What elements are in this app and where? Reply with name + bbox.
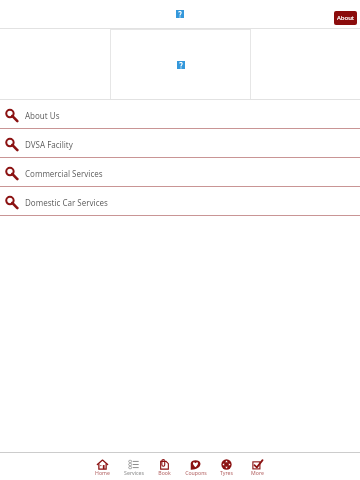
button[interactable]: Domestic Car Services	[0, 187, 360, 216]
button[interactable]: Services	[118, 453, 149, 480]
staticText: Services	[124, 469, 144, 476]
button[interactable]: Home	[87, 453, 118, 480]
button[interactable]: About Us	[0, 100, 360, 129]
staticText: Commercial Services	[25, 168, 103, 179]
staticText: Domestic Car Services	[25, 197, 108, 208]
button[interactable]: Tyres	[211, 453, 242, 480]
staticText: DVSA Facility	[25, 139, 73, 150]
staticText: Coupons	[185, 469, 207, 476]
staticText: Book	[158, 469, 171, 476]
staticText: Home	[95, 469, 110, 476]
staticText: More	[251, 469, 264, 476]
button[interactable]: About	[334, 11, 357, 25]
staticText: About Us	[25, 110, 60, 121]
button[interactable]: Coupons	[180, 453, 211, 480]
staticText: Tyres	[220, 469, 233, 476]
button[interactable]: More	[242, 453, 273, 480]
button[interactable]: Commercial Services	[0, 158, 360, 187]
staticText: About	[337, 14, 355, 22]
button[interactable]: DVSA Facility	[0, 129, 360, 158]
button[interactable]: Book	[149, 453, 180, 480]
